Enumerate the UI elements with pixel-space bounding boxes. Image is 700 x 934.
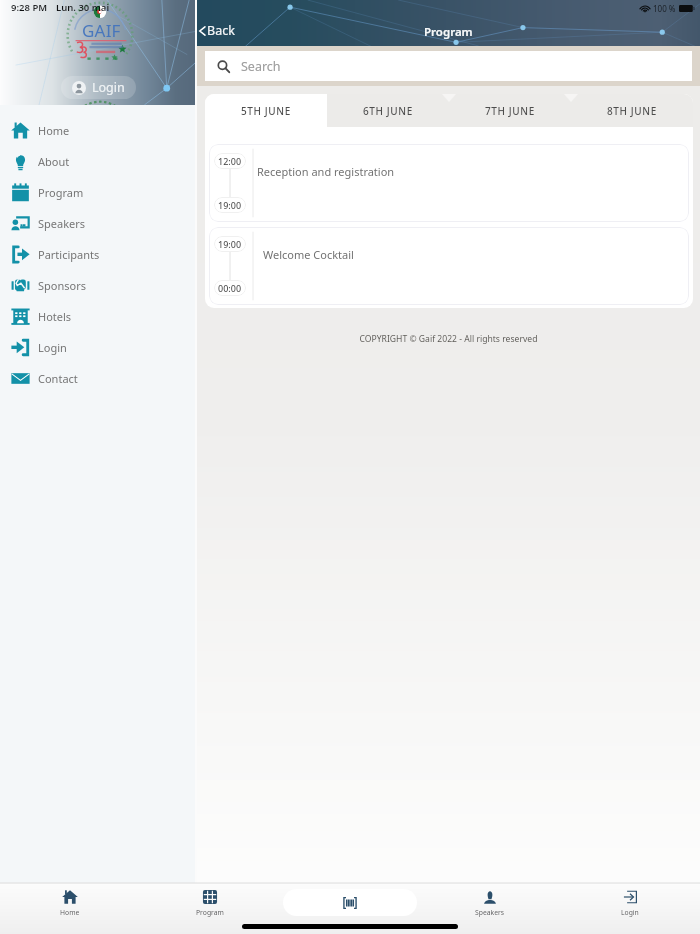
button[interactable]: Login: [560, 889, 700, 917]
staticText: Program: [196, 908, 224, 917]
button[interactable]: Contact: [0, 363, 195, 394]
button[interactable]: 19:00: [209, 227, 689, 305]
staticText: 12:00: [218, 155, 242, 167]
staticText: 8TH JUNE: [607, 104, 657, 118]
button[interactable]: 12:00: [209, 144, 689, 222]
button[interactable]: 6TH JUNE: [327, 94, 449, 127]
staticText: 19:00: [218, 199, 242, 211]
button[interactable]: Home: [0, 115, 195, 146]
staticText: 19:00: [218, 238, 242, 250]
staticText: 00:00: [218, 282, 242, 294]
staticText: Contact: [38, 371, 78, 386]
button[interactable]: Speakers: [420, 889, 560, 917]
staticText: Back: [207, 22, 235, 39]
button[interactable]: About: [0, 146, 195, 177]
staticText: Home: [60, 908, 80, 917]
button[interactable]: Scan badge: [283, 889, 417, 916]
staticText: GAIF: [82, 19, 121, 42]
staticText: Hotels: [38, 309, 72, 324]
staticText: 7TH JUNE: [485, 104, 535, 118]
button[interactable]: Back: [197, 17, 243, 46]
button[interactable]: Participants: [0, 239, 195, 270]
staticText: Welcome Cocktail: [263, 247, 354, 262]
button[interactable]: Program: [140, 889, 280, 917]
button[interactable]: Search: [205, 51, 692, 81]
staticText: Participants: [38, 247, 100, 262]
staticText: Lun. 30 mai: [56, 1, 110, 14]
staticText: Speakers: [475, 908, 505, 917]
staticText: Speakers: [38, 216, 86, 231]
button[interactable]: Program: [0, 177, 195, 208]
button[interactable]: Login: [61, 76, 136, 99]
staticText: Program: [38, 185, 84, 200]
staticText: Sponsors: [38, 278, 86, 293]
staticText: Home: [38, 123, 70, 138]
staticText: 100 %: [653, 3, 676, 14]
button[interactable]: Login: [0, 332, 195, 363]
staticText: Search: [241, 58, 281, 75]
staticText: Program: [424, 24, 473, 40]
staticText: Login: [38, 340, 67, 355]
button[interactable]: Hotels: [0, 301, 195, 332]
staticText: COPYRIGHT © Gaif 2022 - All rights reser…: [197, 333, 700, 345]
staticText: 5TH JUNE: [241, 104, 291, 118]
staticText: 9:28 PM: [11, 1, 48, 14]
staticText: Login: [92, 79, 125, 96]
button[interactable]: 5TH JUNE: [205, 94, 327, 127]
staticText: About: [38, 154, 70, 169]
staticText: Reception and registration: [257, 164, 395, 179]
button[interactable]: Sponsors: [0, 270, 195, 301]
button[interactable]: 7TH JUNE: [449, 94, 571, 127]
staticText: 6TH JUNE: [363, 104, 413, 118]
staticText: Login: [621, 908, 639, 917]
button[interactable]: Speakers: [0, 208, 195, 239]
button[interactable]: Home: [0, 889, 140, 917]
button[interactable]: 8TH JUNE: [571, 94, 693, 127]
